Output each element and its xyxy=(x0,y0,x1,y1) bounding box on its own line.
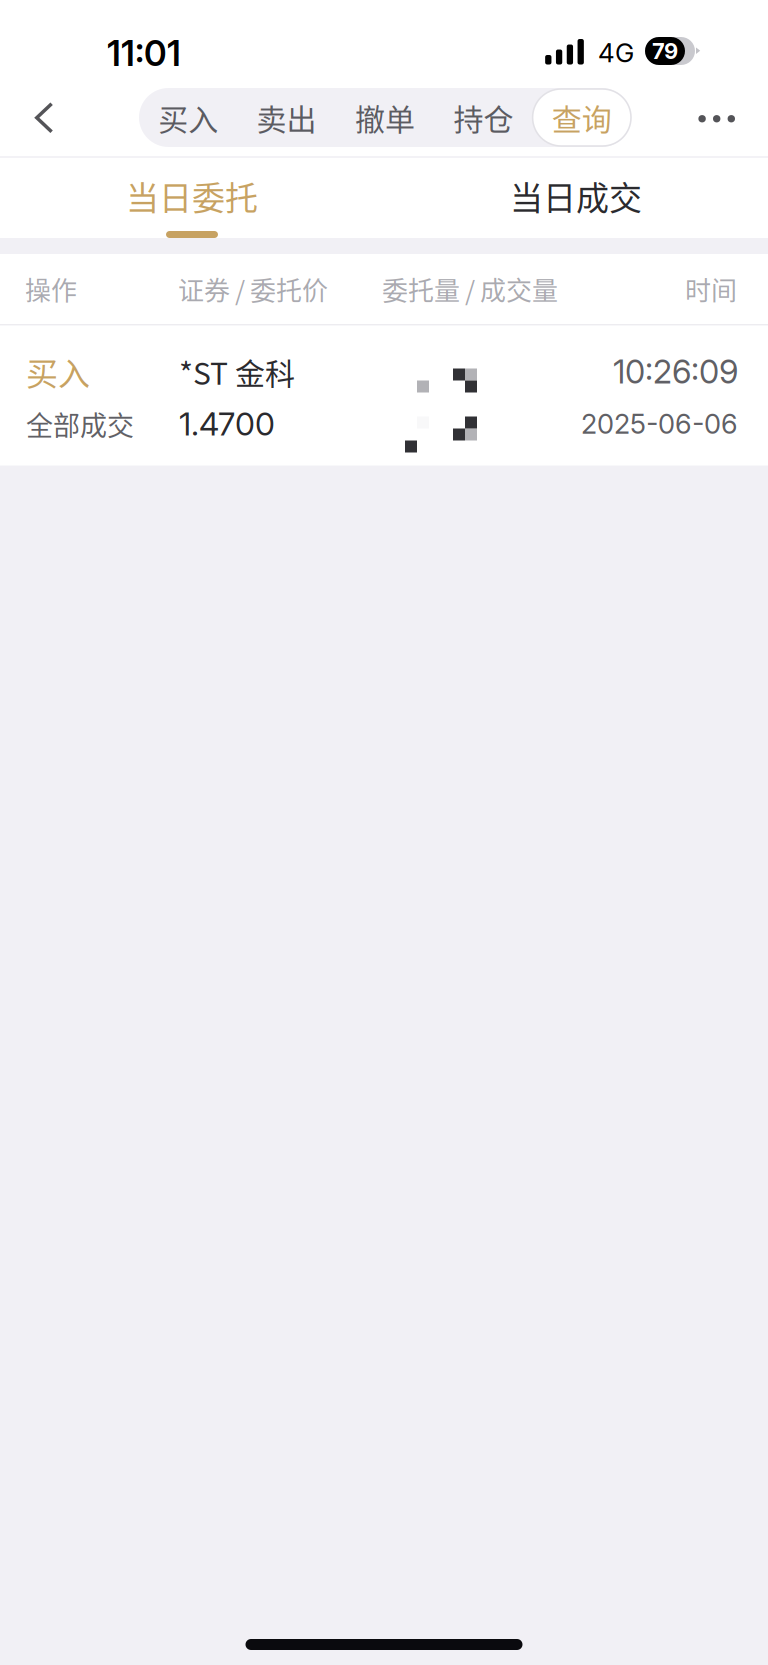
button[interactable]: 查询 xyxy=(533,89,631,146)
button[interactable]: 买入 xyxy=(139,89,237,146)
staticText: 当日成交 xyxy=(510,172,642,220)
staticText: 持仓 xyxy=(453,96,513,139)
staticText: 查询 xyxy=(552,96,612,139)
staticText: 1.4700 xyxy=(179,405,275,443)
button[interactable]: 持仓 xyxy=(434,89,533,146)
button[interactable]: More options xyxy=(672,87,768,147)
staticText: 10:26:09 xyxy=(613,352,738,391)
staticText: 2025-06-06 xyxy=(581,407,738,440)
staticText: 全部成交 xyxy=(26,404,134,443)
staticText: *ST 金科 xyxy=(179,350,295,393)
staticText: 买入 xyxy=(158,96,218,139)
staticText: 撤单 xyxy=(355,96,415,139)
staticText: 委托量 / 成交量 xyxy=(382,270,558,308)
staticText: 卖出 xyxy=(257,96,317,139)
staticText: 证券 / 委托价 xyxy=(178,270,328,308)
button[interactable]: 当日成交 xyxy=(384,158,768,238)
button[interactable]: 撤单 xyxy=(336,89,434,146)
staticText: 79 xyxy=(652,38,678,64)
button[interactable]: 当日委托 xyxy=(0,158,384,238)
staticText: 买入 xyxy=(26,348,90,395)
staticText: 11:01 xyxy=(107,32,181,74)
button[interactable]: Back xyxy=(0,86,71,148)
button[interactable]: 卖出 xyxy=(237,89,336,146)
staticText: 当日委托 xyxy=(126,172,258,220)
staticText: 时间 xyxy=(685,270,737,308)
button[interactable]: 买入 xyxy=(0,325,768,465)
staticText: 操作 xyxy=(25,270,77,308)
staticText: 4G xyxy=(598,37,634,68)
